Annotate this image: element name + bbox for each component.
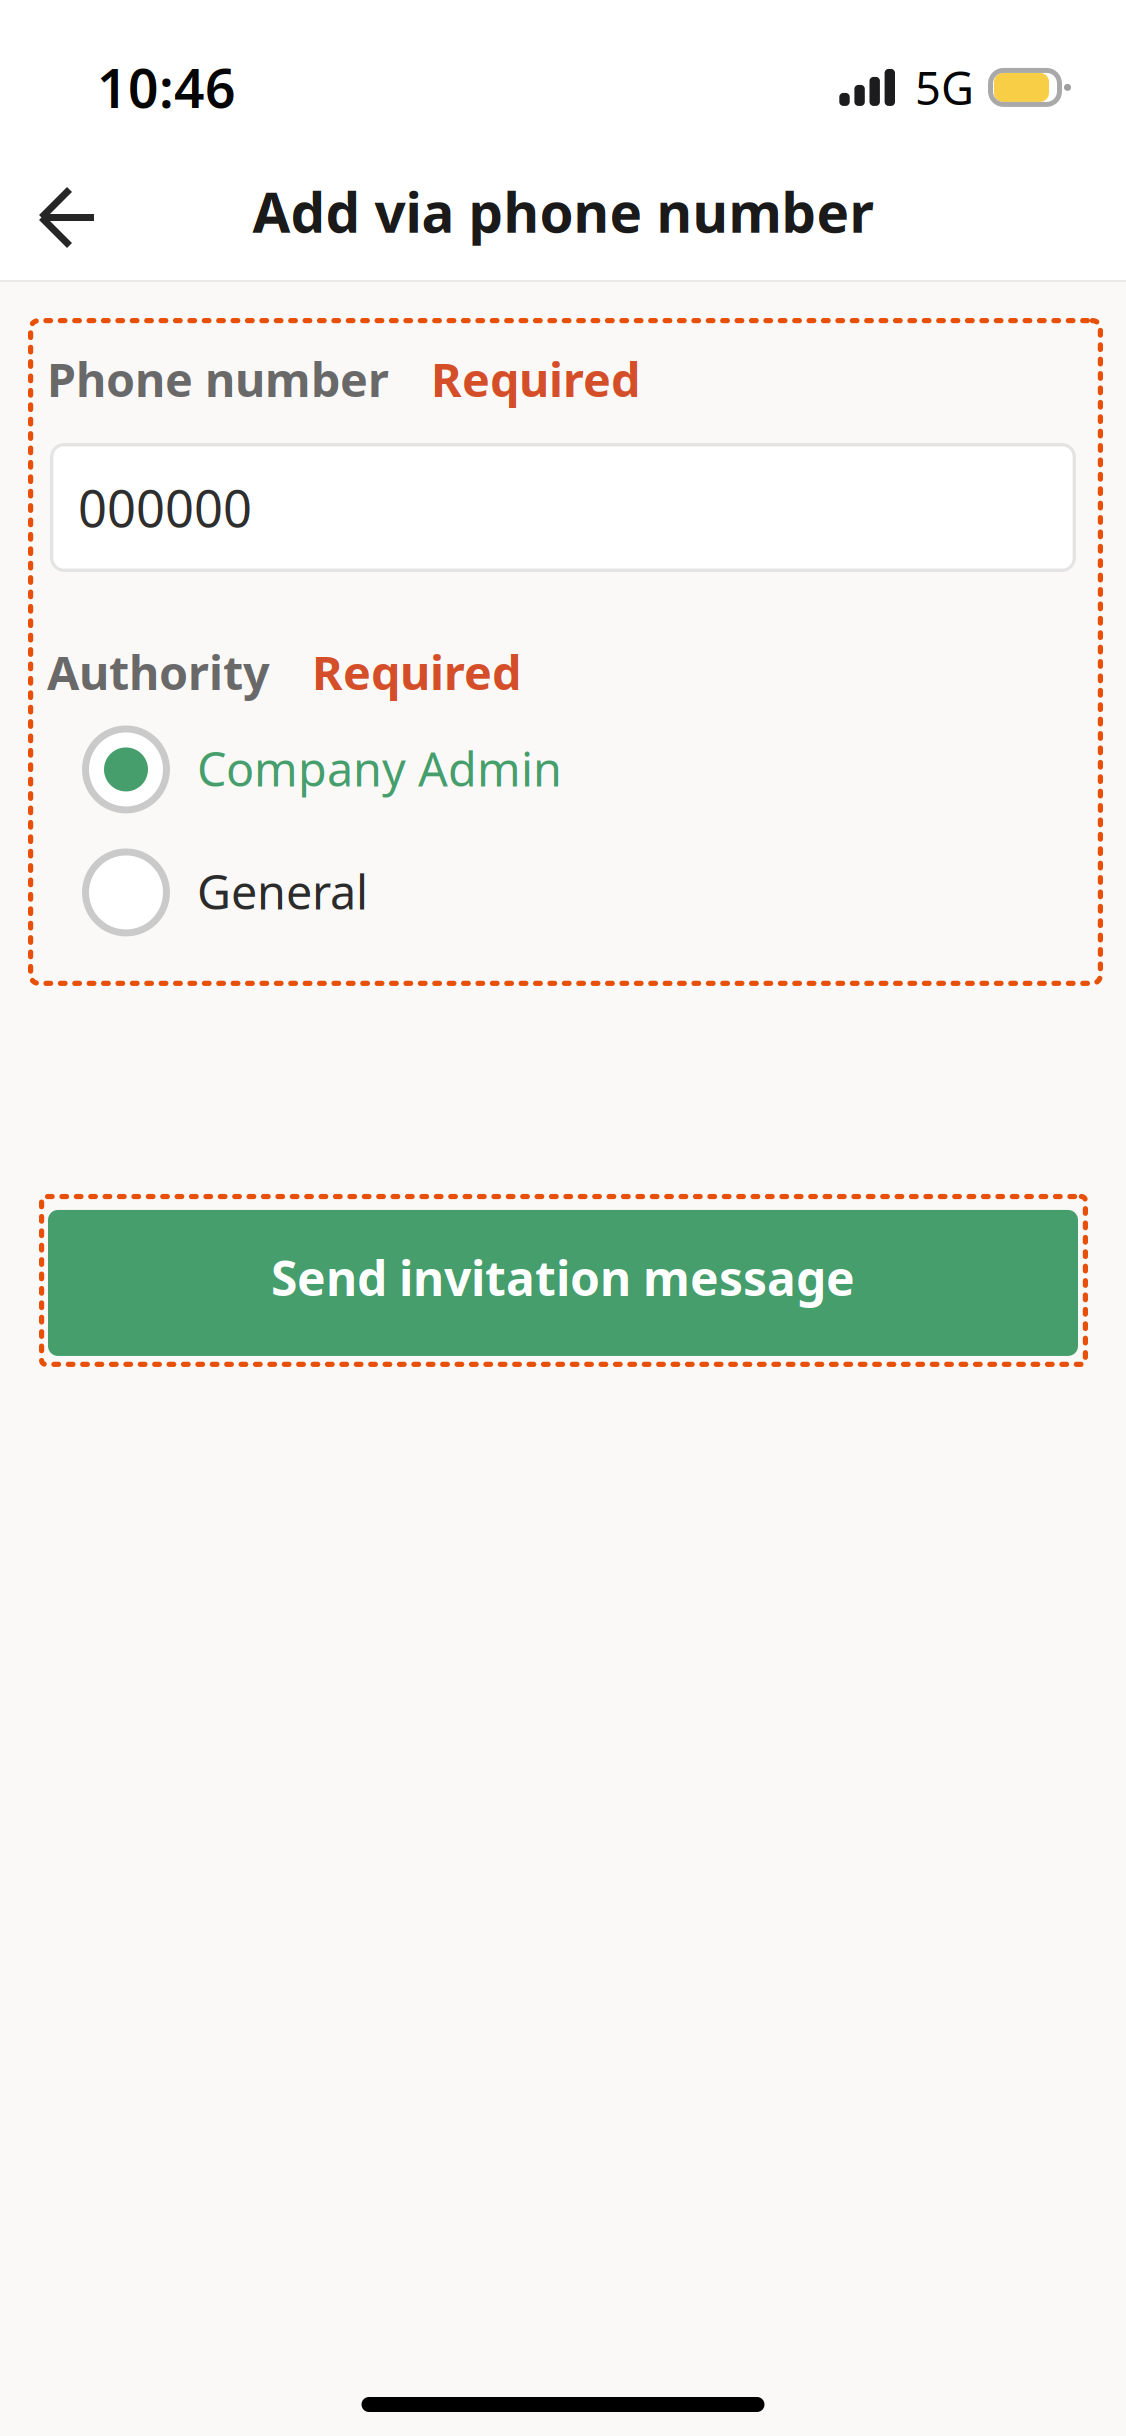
staticText: Authority	[47, 641, 270, 703]
button[interactable]: General	[28, 831, 1103, 954]
staticText: Send invitation message	[271, 1246, 855, 1309]
button[interactable]: Company Admin	[28, 708, 1103, 831]
button[interactable]: Back	[0, 148, 132, 280]
staticText: Required	[312, 641, 521, 703]
staticText: Required	[431, 348, 640, 410]
button[interactable]: Send invitation message	[39, 1194, 1088, 1367]
staticText: Company Admin	[197, 737, 562, 799]
staticText: Add via phone number	[252, 175, 873, 248]
staticText: 000000	[78, 474, 252, 541]
staticText: 10:46	[97, 52, 236, 123]
staticText: Phone number	[47, 348, 389, 410]
staticText: General	[197, 860, 368, 922]
staticText: 5G	[915, 57, 974, 117]
